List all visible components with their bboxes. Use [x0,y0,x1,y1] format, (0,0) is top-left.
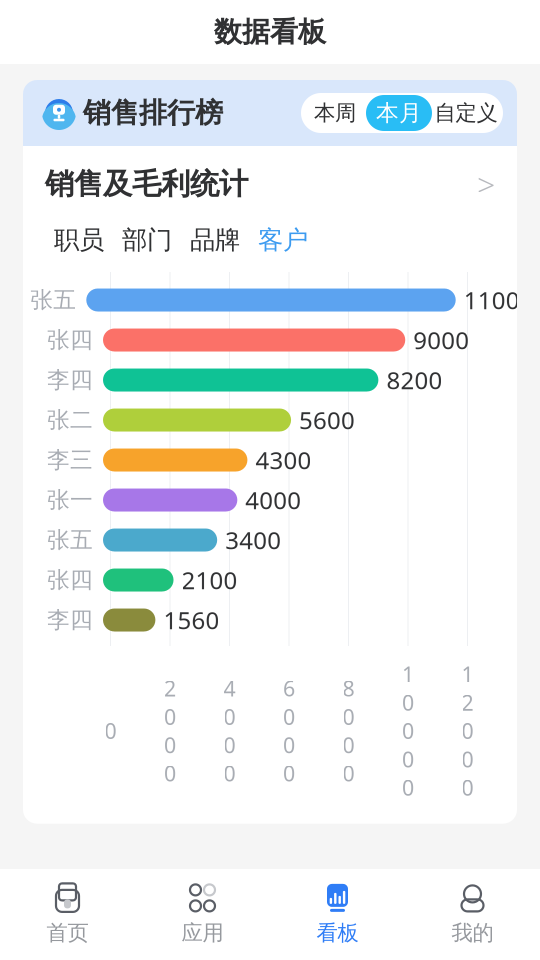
staticText: 销售及毛利统计 [45,166,248,202]
button[interactable]: 应用 [135,869,270,960]
staticText: 12000 [461,660,473,802]
staticText: 0 [104,717,116,745]
staticText: 我的 [451,920,493,946]
button[interactable]: 职员 [45,222,113,258]
button[interactable]: 本月 [366,95,432,131]
button[interactable]: 自定义 [432,96,500,130]
button[interactable]: 首页 [0,869,135,960]
staticText: 10000 [402,660,414,802]
staticText: 李四 [47,606,93,634]
button[interactable]: 品牌 [181,222,249,258]
staticText: 3400 [225,524,281,556]
staticText: 李三 [47,446,93,474]
staticText: 看板 [316,920,358,946]
staticText: 部门 [122,224,172,255]
staticText: 2100 [181,564,237,596]
staticText: 自定义 [434,100,497,126]
staticText: 11000 [464,284,534,316]
staticText: 5600 [299,404,355,436]
staticText: 4300 [255,444,311,476]
staticText: 客户 [258,224,308,255]
staticText: 数据看板 [214,15,326,49]
staticText: 张五 [47,526,93,554]
staticText: 张四 [47,566,93,594]
staticText: 本周 [314,100,356,126]
staticText: 8000 [342,674,354,787]
staticText: 9000 [413,324,469,356]
staticText: 应用 [181,920,223,946]
staticText: 销售排行榜 [83,96,223,130]
staticText: 4000 [223,674,235,787]
button[interactable]: 销售及毛利统计 [23,146,517,222]
staticText: > [477,163,495,205]
button[interactable]: 部门 [113,222,181,258]
staticText: 2000 [164,674,176,787]
staticText: 张四 [47,326,93,354]
staticText: 品牌 [190,224,240,255]
staticText: 张二 [47,406,93,434]
button[interactable]: 我的 [405,869,540,960]
staticText: 6000 [283,674,295,787]
button[interactable]: 本周 [304,96,366,130]
button[interactable]: 看板 [270,869,405,960]
staticText: 李四 [47,366,93,394]
button[interactable]: 客户 [249,222,317,258]
staticText: 首页 [46,920,88,946]
staticText: 本月 [376,99,422,127]
staticText: 1560 [163,604,219,636]
staticText: 8200 [386,364,442,396]
staticText: 4000 [245,484,301,516]
staticText: 张五 [30,286,76,314]
staticText: 职员 [54,224,104,255]
staticText: 张一 [47,486,93,514]
